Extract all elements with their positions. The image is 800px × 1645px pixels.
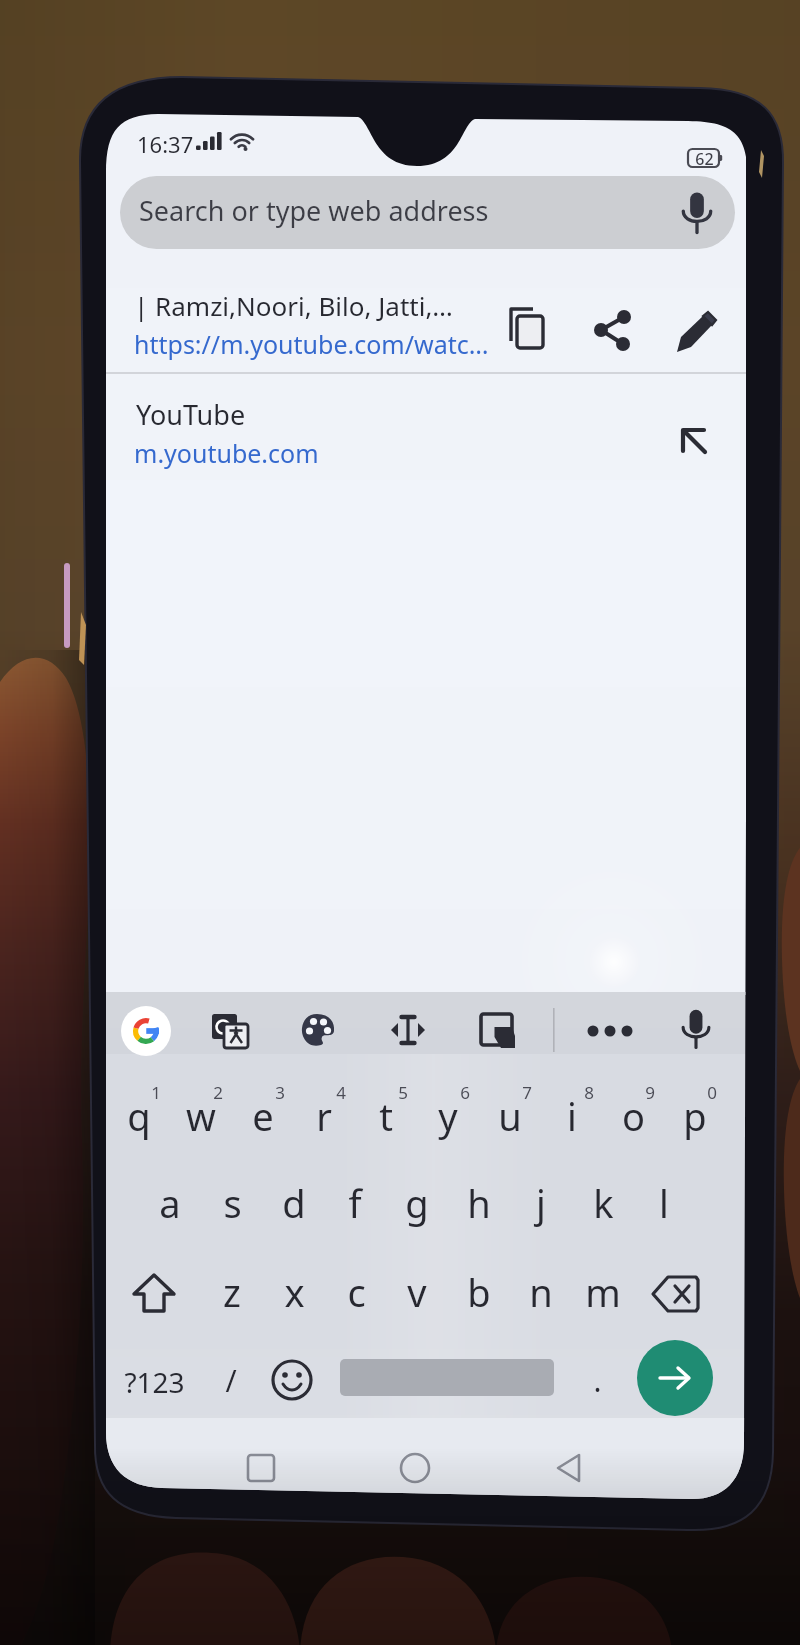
button[interactable]: z <box>202 1252 262 1338</box>
staticText: / <box>225 1360 237 1401</box>
button[interactable]: Edit <box>662 285 734 371</box>
button[interactable]: h <box>449 1162 509 1248</box>
button[interactable]: y <box>418 1072 478 1158</box>
button[interactable]: Recent apps <box>205 1430 317 1502</box>
staticText: 6 <box>460 1081 470 1104</box>
staticText: YouTube <box>136 396 246 433</box>
staticText: s <box>223 1177 242 1229</box>
staticText: v <box>407 1266 427 1318</box>
button[interactable]: Stickers <box>468 1000 526 1062</box>
staticText: w <box>186 1090 216 1142</box>
button[interactable]: . <box>568 1340 628 1420</box>
staticText: 5 <box>398 1081 408 1104</box>
button[interactable]: Space <box>330 1340 564 1420</box>
staticText: h <box>467 1177 491 1229</box>
staticText: x <box>284 1266 305 1318</box>
button[interactable]: Voice input <box>666 1000 728 1062</box>
button[interactable]: p <box>665 1072 725 1158</box>
staticText: o <box>622 1090 645 1142</box>
staticText: l <box>659 1177 669 1229</box>
button[interactable]: Copy link <box>490 285 562 371</box>
staticText: 7 <box>522 1081 532 1104</box>
staticText: Search or type web address <box>139 192 489 229</box>
staticText: q <box>127 1090 151 1142</box>
button[interactable]: o <box>603 1072 663 1158</box>
button[interactable]: t <box>356 1072 416 1158</box>
button[interactable]: e <box>233 1072 293 1158</box>
button[interactable]: m <box>573 1252 633 1338</box>
staticText: m <box>585 1266 621 1318</box>
button[interactable]: j <box>511 1162 571 1248</box>
staticText: k <box>593 1177 614 1229</box>
button[interactable]: s <box>202 1162 262 1248</box>
staticText: j <box>536 1177 546 1229</box>
button[interactable]: d <box>264 1162 324 1248</box>
button[interactable]: r <box>294 1072 354 1158</box>
button[interactable]: Search or type web address <box>120 176 665 249</box>
button[interactable]: n <box>511 1252 571 1338</box>
staticText: 3 <box>275 1081 285 1104</box>
staticText: 16:37 <box>137 129 194 159</box>
button[interactable]: Insert suggestion <box>662 408 730 476</box>
staticText: a <box>159 1177 181 1229</box>
staticText: z <box>223 1266 241 1318</box>
button[interactable]: Go <box>637 1340 713 1416</box>
button[interactable]: b <box>449 1252 509 1338</box>
button[interactable]: More options <box>580 1000 642 1062</box>
staticText: 62 <box>695 148 714 170</box>
button[interactable]: u <box>480 1072 540 1158</box>
button[interactable]: f <box>325 1162 385 1248</box>
button[interactable]: k <box>573 1162 633 1248</box>
button[interactable]: Shift <box>120 1252 190 1338</box>
staticText: m.youtube.com <box>134 436 319 470</box>
button[interactable]: Home <box>359 1430 471 1502</box>
button[interactable]: g <box>387 1162 447 1248</box>
staticText: n <box>529 1266 553 1318</box>
button[interactable]: Themes <box>290 1000 348 1062</box>
staticText: 9 <box>645 1081 655 1104</box>
button[interactable]: q <box>109 1072 169 1158</box>
staticText: u <box>498 1090 522 1142</box>
staticText: | Ramzi,Noori, Bilo, Jatti,… <box>134 288 453 323</box>
button[interactable]: | Ramzi,Noori, Bilo, Jatti,… https://m.y… <box>106 258 496 372</box>
button[interactable]: w <box>171 1072 231 1158</box>
staticText: e <box>252 1090 274 1142</box>
staticText: y <box>438 1090 458 1142</box>
button[interactable]: i <box>542 1072 602 1158</box>
staticText: b <box>467 1266 491 1318</box>
button[interactable]: ?123 <box>120 1340 192 1420</box>
staticText: t <box>379 1090 393 1142</box>
staticText: 2 <box>213 1081 223 1104</box>
staticText: g <box>405 1177 429 1229</box>
button[interactable]: a <box>140 1162 200 1248</box>
button[interactable]: Share <box>578 285 650 371</box>
staticText: 1 <box>151 1081 161 1104</box>
staticText: r <box>316 1090 332 1142</box>
button[interactable]: Text editing <box>380 1000 438 1062</box>
button[interactable]: v <box>387 1252 447 1338</box>
staticText: d <box>282 1177 306 1229</box>
staticText: . <box>593 1360 602 1401</box>
button[interactable]: Voice search <box>665 176 735 249</box>
staticText: p <box>683 1090 707 1142</box>
staticText: f <box>348 1177 362 1229</box>
button[interactable]: c <box>326 1252 386 1338</box>
staticText: c <box>347 1266 366 1318</box>
staticText: 8 <box>584 1081 594 1104</box>
button[interactable]: Back <box>513 1430 625 1502</box>
button[interactable]: Translate <box>200 1000 258 1062</box>
button[interactable]: l <box>634 1162 694 1248</box>
button[interactable]: Emoji <box>262 1340 324 1420</box>
button[interactable]: Backspace <box>646 1252 716 1338</box>
button[interactable]: / <box>200 1340 262 1420</box>
staticText: ?123 <box>124 1363 185 1401</box>
button[interactable]: Google search <box>118 1000 176 1062</box>
staticText: i <box>567 1090 577 1142</box>
staticText: https://m.youtube.com/watc… <box>134 327 489 361</box>
staticText: 0 <box>707 1081 717 1104</box>
button[interactable]: YouTube m.youtube.com <box>106 380 656 484</box>
button[interactable]: x <box>264 1252 324 1338</box>
staticText: 4 <box>336 1081 346 1104</box>
